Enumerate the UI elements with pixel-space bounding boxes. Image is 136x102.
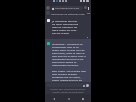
button[interactable]: Back — [51, 96, 56, 101]
button[interactable]: chat.openai.com/c/9f3 — [51, 6, 83, 10]
button[interactable]: Voice — [86, 84, 89, 87]
staticText: Tellement : Sourpenu je comprends que tu… — [52, 42, 86, 82]
button[interactable]: Account — [46, 6, 50, 10]
button[interactable]: More options — [87, 6, 90, 10]
button[interactable]: Send — [46, 83, 90, 87]
button[interactable]: Reload — [84, 6, 87, 9]
staticText: Generation de Demande code — [51, 12, 85, 15]
button[interactable]: Edit message — [86, 36, 88, 38]
button[interactable]: Send — [82, 84, 85, 87]
staticText: ChatGPT peut commettre des erreurs. Pens… — [48, 88, 88, 94]
button[interactable]: Home — [66, 96, 71, 101]
button[interactable]: Recents — [80, 96, 85, 101]
staticText: Je distingue permet de faire comprendre … — [52, 19, 79, 34]
staticText: chat.openai.com/c/9f3 — [55, 7, 80, 10]
